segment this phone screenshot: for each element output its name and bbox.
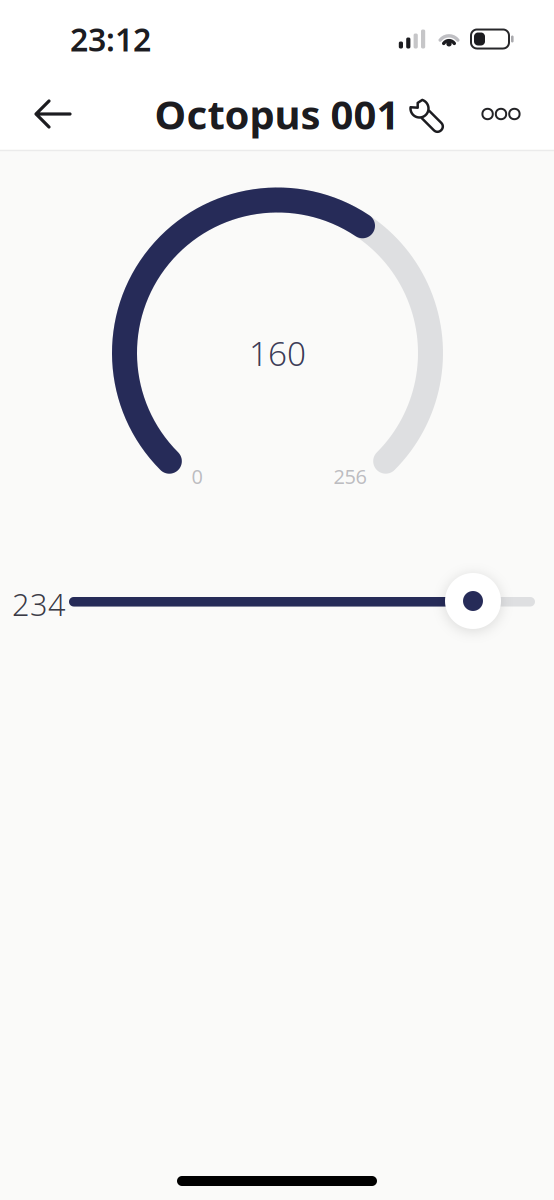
staticText: 160 <box>249 331 306 375</box>
button[interactable]: More options <box>464 78 538 150</box>
staticText: 0 <box>191 463 202 490</box>
staticText: 256 <box>333 463 366 490</box>
staticText: Octopus 001 <box>154 87 399 140</box>
staticText: 23:12 <box>70 18 151 60</box>
staticText: 234 <box>12 584 66 624</box>
button[interactable]: Back <box>16 78 90 150</box>
